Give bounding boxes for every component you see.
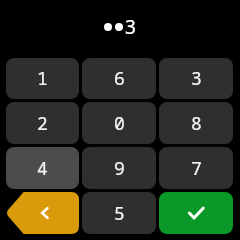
button[interactable]: Confirm bbox=[159, 192, 233, 234]
staticText: 3 bbox=[191, 66, 202, 91]
staticText: 9 bbox=[114, 156, 125, 181]
button[interactable]: 0 bbox=[82, 102, 156, 144]
button[interactable]: 6 bbox=[82, 58, 156, 99]
staticText: 6 bbox=[114, 66, 125, 91]
staticText: 7 bbox=[191, 156, 202, 181]
button[interactable]: 7 bbox=[159, 147, 233, 189]
button[interactable]: 9 bbox=[82, 147, 156, 189]
staticText: 4 bbox=[37, 156, 48, 181]
staticText: 3 bbox=[125, 14, 136, 40]
staticText: 5 bbox=[114, 201, 125, 226]
button[interactable]: 8 bbox=[159, 102, 233, 144]
button[interactable]: 1 bbox=[6, 58, 79, 99]
button[interactable]: 2 bbox=[6, 102, 79, 144]
button[interactable]: 5 bbox=[82, 192, 156, 234]
staticText: 8 bbox=[191, 111, 202, 136]
button[interactable]: 4 bbox=[6, 147, 79, 189]
staticText: 2 bbox=[37, 111, 48, 136]
staticText: 1 bbox=[37, 66, 48, 91]
button[interactable]: 3 bbox=[159, 58, 233, 99]
button[interactable]: Delete bbox=[6, 192, 79, 234]
staticText: 0 bbox=[114, 111, 125, 136]
